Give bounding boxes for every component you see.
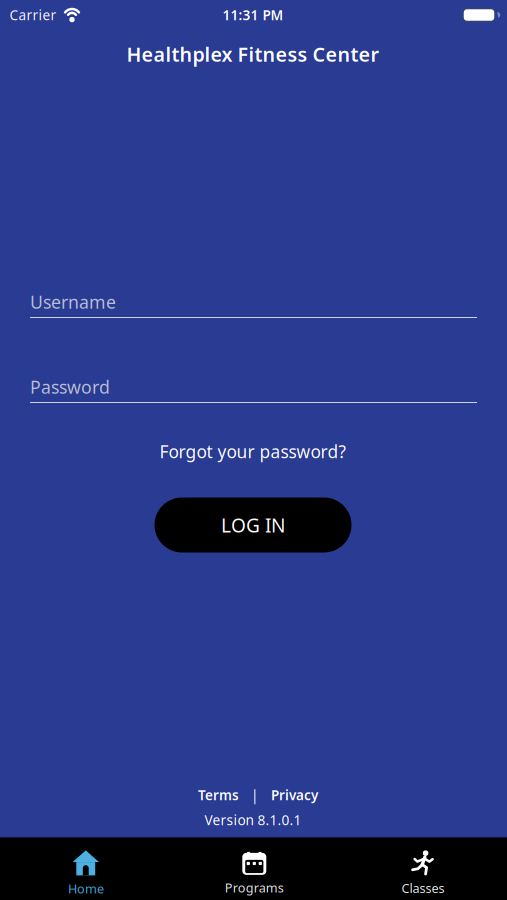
- button[interactable]: LOG IN: [154, 497, 351, 552]
- staticText: Home: [68, 880, 104, 897]
- staticText: Terms: [198, 786, 239, 804]
- staticText: Healthplex Fitness Center: [126, 41, 379, 67]
- button[interactable]: Username: [30, 290, 477, 330]
- staticText: 11:31 PM: [222, 6, 283, 24]
- button[interactable]: Programs: [189, 845, 319, 900]
- button[interactable]: Forgot your password?: [159, 440, 346, 463]
- button[interactable]: Terms: [198, 786, 239, 804]
- button[interactable]: Privacy: [271, 786, 318, 804]
- staticText: Username: [30, 290, 116, 314]
- staticText: |: [251, 786, 259, 804]
- staticText: Password: [30, 375, 110, 399]
- button[interactable]: Password: [30, 375, 477, 415]
- button[interactable]: Classes: [358, 845, 488, 900]
- staticText: Programs: [225, 879, 284, 896]
- staticText: LOG IN: [221, 512, 285, 538]
- staticText: Classes: [401, 879, 444, 897]
- staticText: Carrier: [9, 6, 56, 24]
- staticText: Privacy: [271, 786, 318, 804]
- button[interactable]: Home: [21, 845, 151, 900]
- staticText: Version 8.1.0.1: [204, 811, 301, 829]
- staticText: Forgot your password?: [159, 440, 346, 463]
